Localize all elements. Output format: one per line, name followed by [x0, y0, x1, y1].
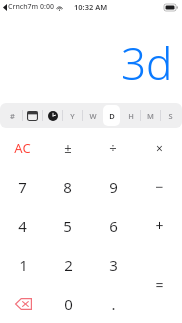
- button[interactable]: 5: [45, 206, 90, 245]
- staticText: Crnch7m 0:00: [8, 2, 54, 12]
- staticText: AC: [14, 139, 31, 157]
- staticText: .: [111, 294, 116, 314]
- button[interactable]: S: [162, 105, 179, 126]
- button[interactable]: 1: [0, 245, 46, 284]
- button[interactable]: Plus: [136, 206, 182, 245]
- button[interactable]: 6: [90, 206, 136, 245]
- button[interactable]: 7: [0, 167, 45, 206]
- button[interactable]: Calendar: [24, 105, 41, 126]
- staticText: M: [147, 111, 154, 121]
- staticText: 2: [64, 255, 73, 275]
- button[interactable]: Minus: [136, 167, 182, 206]
- staticText: 7: [18, 177, 27, 197]
- button[interactable]: Plus minus: [45, 128, 90, 167]
- other: Clock: [48, 111, 58, 121]
- staticText: Y: [70, 111, 75, 121]
- staticText: #: [10, 111, 15, 121]
- button[interactable]: 9: [90, 167, 136, 206]
- staticText: W: [89, 111, 97, 121]
- button[interactable]: 4: [0, 206, 45, 245]
- button[interactable]: Multiply: [136, 128, 182, 167]
- button[interactable]: H: [122, 105, 139, 126]
- staticText: D: [109, 111, 115, 121]
- staticText: 3: [109, 255, 118, 275]
- button[interactable]: Delete: [0, 284, 46, 323]
- staticText: 4: [18, 216, 27, 236]
- staticText: 1: [19, 255, 28, 275]
- button[interactable]: D: [103, 105, 120, 126]
- button[interactable]: Divide: [90, 128, 136, 167]
- other: Calendar: [27, 111, 38, 121]
- button[interactable]: 0: [46, 284, 91, 323]
- staticText: +: [155, 216, 164, 235]
- button[interactable]: Clock: [44, 105, 61, 126]
- staticText: 3d: [121, 33, 173, 93]
- button[interactable]: Equals: [136, 245, 182, 323]
- button[interactable]: Y: [64, 105, 81, 126]
- button[interactable]: 3: [91, 245, 136, 284]
- button[interactable]: AC: [0, 128, 45, 167]
- staticText: ÷: [109, 139, 117, 157]
- button[interactable]: M: [142, 105, 159, 126]
- staticText: −: [155, 177, 164, 196]
- staticText: 6: [109, 216, 118, 236]
- button[interactable]: W: [84, 105, 101, 126]
- button[interactable]: 8: [45, 167, 90, 206]
- staticText: H: [128, 111, 134, 121]
- staticText: S: [168, 111, 173, 121]
- staticText: 0: [64, 294, 73, 314]
- staticText: =: [155, 275, 164, 294]
- button[interactable]: #: [3, 105, 21, 126]
- button[interactable]: .: [91, 284, 136, 323]
- staticText: 10:32 AM: [74, 2, 108, 12]
- staticText: ±: [64, 139, 72, 157]
- button[interactable]: 2: [46, 245, 91, 284]
- staticText: 9: [109, 177, 118, 197]
- staticText: 8: [63, 177, 72, 197]
- staticText: ×: [156, 140, 163, 156]
- staticText: 5: [63, 216, 72, 236]
